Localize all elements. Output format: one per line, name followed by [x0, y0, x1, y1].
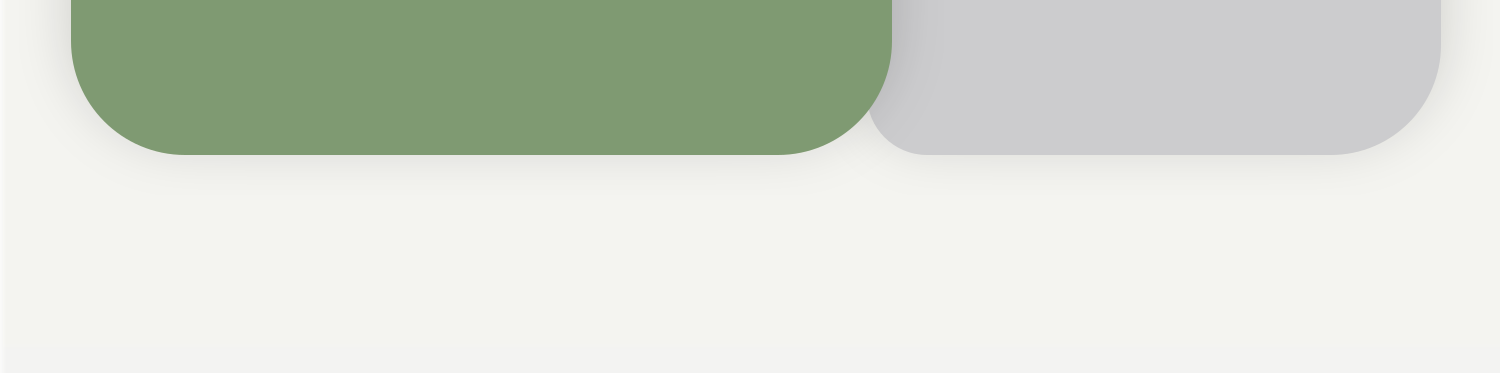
button[interactable]: Selected segment	[71, 0, 892, 155]
button[interactable]: Unselected segment	[867, 0, 1441, 155]
